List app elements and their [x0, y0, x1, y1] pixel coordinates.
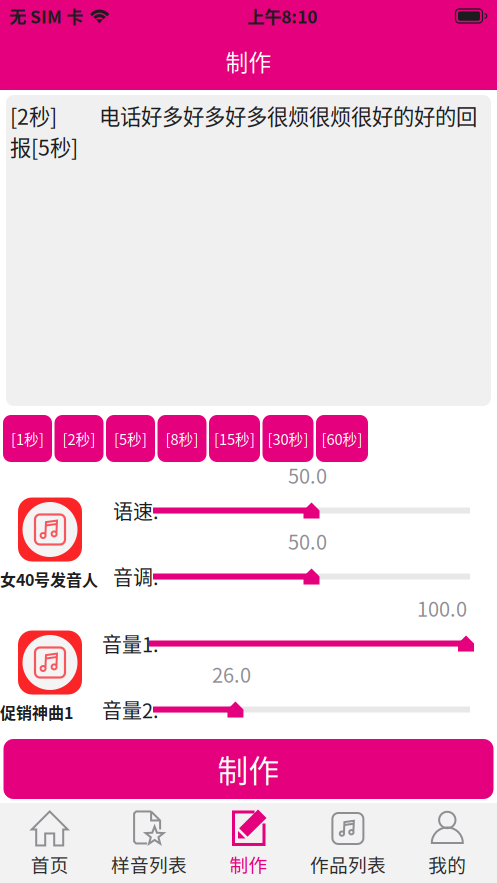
- staticText: [8秒]: [165, 428, 198, 449]
- staticText: [2秒] 电话好多好多好多很烦很烦很好的好的回报[5秒]: [10, 100, 477, 162]
- staticText: 无 SIM 卡: [9, 3, 83, 29]
- button[interactable]: 女40号发音人: [0, 455, 98, 587]
- staticText: [1秒]: [11, 428, 44, 449]
- staticText: 制作: [229, 850, 267, 877]
- button[interactable]: 我的: [398, 803, 497, 883]
- staticText: 50.0: [288, 526, 327, 555]
- button[interactable]: [2秒]: [54, 415, 103, 462]
- staticText: 音调:: [113, 562, 159, 591]
- button[interactable]: 制作: [3, 739, 493, 803]
- staticText: 女40号发音人: [0, 567, 98, 591]
- staticText: 音量1:: [102, 629, 159, 658]
- staticText: 100.0: [417, 593, 467, 622]
- staticText: 音量2:: [102, 695, 159, 724]
- button[interactable]: [1秒]: [3, 415, 52, 462]
- staticText: [2秒]: [62, 428, 95, 449]
- button[interactable]: [5秒]: [106, 415, 155, 462]
- staticText: 上午8:10: [247, 3, 317, 29]
- staticText: 26.0: [212, 659, 251, 688]
- staticText: 样音列表: [111, 850, 187, 877]
- button[interactable]: 制作: [199, 803, 298, 883]
- staticText: 语速:: [113, 496, 159, 525]
- button[interactable]: [30秒]: [262, 415, 313, 462]
- button[interactable]: 作品列表: [298, 803, 398, 883]
- staticText: 50.0: [288, 460, 327, 489]
- button[interactable]: [8秒]: [157, 415, 206, 462]
- staticText: 首页: [31, 850, 69, 877]
- staticText: [30秒]: [267, 428, 308, 449]
- staticText: 制作: [225, 45, 271, 77]
- button[interactable]: 促销神曲1: [0, 588, 98, 720]
- button[interactable]: 样音列表: [99, 803, 199, 883]
- staticText: [5秒]: [114, 428, 147, 449]
- button[interactable]: [15秒]: [209, 415, 260, 462]
- staticText: 我的: [428, 850, 466, 877]
- button[interactable]: 首页: [0, 803, 99, 883]
- staticText: 作品列表: [310, 850, 386, 877]
- staticText: 制作: [217, 747, 279, 791]
- staticText: [15秒]: [214, 428, 255, 449]
- staticText: [60秒]: [321, 428, 362, 449]
- button[interactable]: [60秒]: [316, 415, 368, 462]
- staticText: 促销神曲1: [0, 700, 73, 724]
